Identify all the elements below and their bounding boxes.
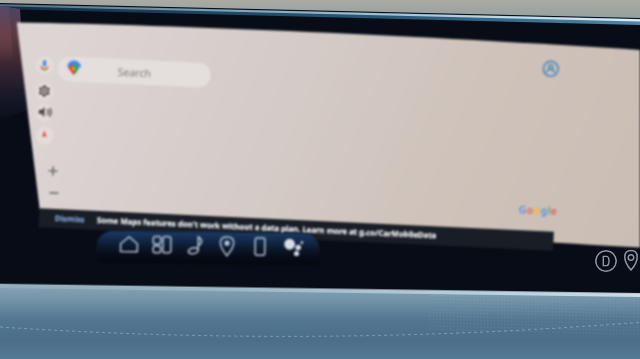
button[interactable]: Assistant [280, 234, 306, 260]
staticText: l [547, 203, 551, 217]
button[interactable]: Navigation [214, 233, 240, 259]
button[interactable]: Drive mode [595, 250, 617, 272]
staticText: Some Maps features don't work without a … [97, 215, 437, 241]
staticText: Search [117, 65, 152, 80]
staticText: e [550, 203, 557, 218]
button[interactable]: Phone [247, 233, 273, 260]
button[interactable]: Search [57, 56, 211, 88]
button[interactable]: Dismiss [55, 213, 85, 225]
button[interactable]: Home [116, 232, 142, 258]
button[interactable]: Mute [35, 103, 54, 122]
staticText: G [518, 202, 527, 216]
button[interactable]: Account [542, 60, 560, 78]
staticText: o [526, 202, 534, 217]
button[interactable]: Apps [149, 232, 175, 258]
staticText: Dismiss [55, 213, 85, 225]
button[interactable]: Location [621, 249, 640, 271]
button[interactable]: Settings [35, 82, 54, 101]
staticText: o [533, 203, 541, 217]
button[interactable]: Voice search [35, 56, 54, 75]
button[interactable]: Recenter [35, 126, 54, 145]
button[interactable]: Media [181, 233, 207, 259]
staticText: g [540, 203, 548, 217]
